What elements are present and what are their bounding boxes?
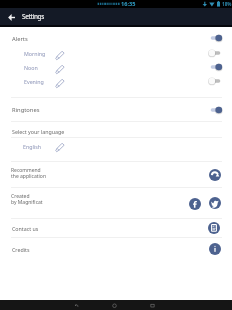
button[interactable]: Created xyxy=(11,190,43,208)
button[interactable]: Off xyxy=(209,48,222,58)
button[interactable]: Select your language xyxy=(12,125,65,137)
button[interactable]: Facebook xyxy=(189,198,201,210)
button[interactable]: the application xyxy=(11,170,46,182)
button[interactable]: On xyxy=(209,33,222,43)
staticText: 16:35 xyxy=(121,0,136,8)
staticText: Noon xyxy=(24,64,38,71)
button[interactable]: Created xyxy=(11,190,30,202)
button[interactable]: Recents xyxy=(133,300,171,310)
button[interactable]: Recommend xyxy=(11,164,41,176)
staticText: by Magnificat xyxy=(11,199,43,206)
button[interactable]: Back xyxy=(4,8,18,27)
staticText: 18% xyxy=(222,1,232,7)
staticText: Created xyxy=(11,193,30,200)
staticText: Settings xyxy=(22,12,44,21)
button[interactable]: Edit xyxy=(54,142,65,153)
button[interactable]: Recommend xyxy=(11,164,46,182)
button[interactable]: Alerts xyxy=(12,33,28,45)
staticText: Credits xyxy=(12,246,30,253)
button[interactable]: Edit xyxy=(54,50,65,61)
staticText: Evening xyxy=(24,78,44,85)
button[interactable]: Morning xyxy=(24,47,46,59)
button[interactable]: Credits xyxy=(12,243,30,255)
staticText: the application xyxy=(11,173,46,180)
button[interactable]: On xyxy=(209,105,222,115)
button[interactable]: Home xyxy=(95,300,133,310)
button[interactable]: Back xyxy=(57,300,95,310)
button[interactable]: English xyxy=(23,140,42,152)
staticText: English xyxy=(23,143,42,150)
button[interactable]: Contact us xyxy=(208,222,220,234)
button[interactable]: Share xyxy=(209,169,221,181)
button[interactable]: Twitter xyxy=(209,197,221,209)
button[interactable]: On xyxy=(209,62,222,72)
button[interactable]: Off xyxy=(209,76,222,86)
button[interactable]: Evening xyxy=(24,75,44,87)
staticText: Morning xyxy=(24,50,46,57)
staticText: Recommend xyxy=(11,167,41,174)
button[interactable]: Credits xyxy=(209,243,221,255)
button[interactable]: Edit xyxy=(54,78,65,89)
staticText: Contact us xyxy=(12,225,39,232)
button[interactable]: by Magnificat xyxy=(11,196,43,208)
button[interactable]: Contact us xyxy=(12,222,39,234)
staticText: Ringtones xyxy=(12,106,40,114)
button[interactable]: Ringtones xyxy=(12,104,40,116)
button[interactable]: Edit xyxy=(54,64,65,75)
staticText: Select your language xyxy=(12,128,65,135)
button[interactable]: Noon xyxy=(24,61,38,73)
staticText: Alerts xyxy=(12,35,28,43)
